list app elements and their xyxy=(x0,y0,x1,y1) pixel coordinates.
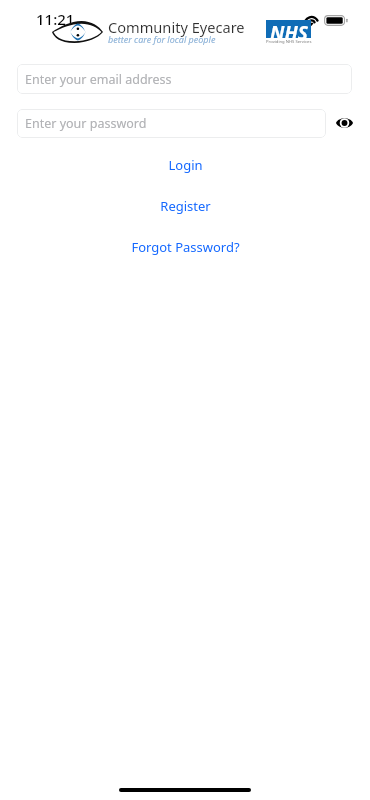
staticText: NHS xyxy=(270,20,308,38)
button[interactable]: Forgot Password? xyxy=(121,237,250,257)
staticText: better care for local people xyxy=(108,33,216,45)
button[interactable]: Register xyxy=(150,196,221,216)
staticText: Enter your email address xyxy=(25,71,172,88)
button[interactable]: Enter your password xyxy=(17,109,326,138)
staticText: 11:21 xyxy=(36,9,75,29)
staticText: Login xyxy=(168,156,203,174)
button[interactable]: Show password xyxy=(329,108,359,138)
staticText: Community Eyecare xyxy=(108,17,245,37)
staticText: Register xyxy=(160,197,211,215)
staticText: Enter your password xyxy=(25,115,147,132)
button[interactable]: Login xyxy=(158,155,213,175)
button[interactable]: Enter your email address xyxy=(17,64,352,94)
staticText: Providing NHS Services xyxy=(266,39,312,45)
staticText: Forgot Password? xyxy=(131,238,240,256)
